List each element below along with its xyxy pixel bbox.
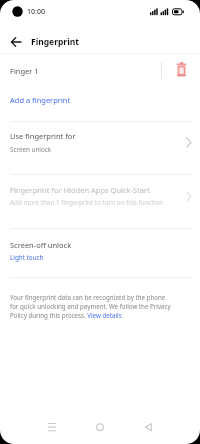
button[interactable]: Finger 1 — [0, 58, 160, 84]
button[interactable]: Fingerprint for Hidden Apps Quick-Start — [0, 181, 200, 213]
button[interactable] — [86, 413, 114, 441]
button[interactable]: Add a fingerprint — [0, 88, 200, 112]
staticText: Fingerprint for Hidden Apps Quick-Start — [10, 185, 150, 195]
button[interactable] — [134, 413, 162, 441]
button[interactable]: Screen-off unlock — [0, 235, 200, 269]
staticText: Add more than 1 fingerprint to turn on t… — [10, 198, 164, 207]
staticText: Finger 1 — [10, 66, 39, 76]
staticText: Fingerprint — [31, 36, 79, 48]
staticText: 10:00 — [27, 7, 45, 17]
button[interactable] — [38, 413, 66, 441]
button[interactable]: Your fingerprint data can be recognized … — [10, 293, 182, 320]
staticText: Light touch — [10, 253, 44, 262]
staticText: Add a fingerprint — [10, 95, 71, 105]
staticText: Screen-off unlock — [10, 240, 72, 250]
button[interactable] — [7, 33, 25, 51]
button[interactable] — [172, 60, 191, 80]
staticText: Use fingerprint for — [10, 131, 76, 141]
staticText: Screen unlock — [10, 145, 52, 154]
button[interactable]: Use fingerprint for — [0, 126, 200, 160]
